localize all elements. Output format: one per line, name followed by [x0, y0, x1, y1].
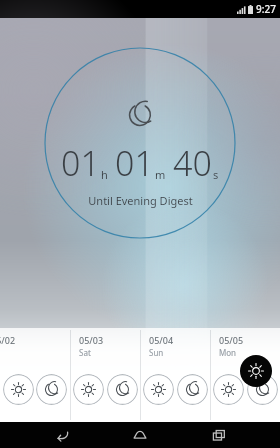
staticText: Sat — [79, 347, 91, 358]
staticText: Until Evening Digest — [88, 193, 193, 208]
staticText: 05/03 — [79, 334, 104, 346]
staticText: m — [155, 167, 166, 182]
button[interactable]: Evening digest — [247, 374, 278, 405]
button[interactable]: Back — [45, 422, 79, 448]
button[interactable]: 05/02 — [0, 328, 70, 422]
button[interactable]: 05/05 — [211, 328, 280, 422]
staticText: h — [101, 167, 108, 182]
staticText: 9:27 — [256, 2, 276, 16]
button[interactable]: Evening digest — [36, 374, 67, 405]
button[interactable]: Evening digest — [177, 374, 208, 405]
button[interactable]: Recent apps — [202, 422, 236, 448]
staticText: 05/02 — [0, 334, 16, 346]
staticText: 05/05 — [219, 334, 244, 346]
staticText: 05/04 — [149, 334, 174, 346]
button[interactable]: Morning digest — [73, 374, 104, 405]
button[interactable]: 05/04 — [141, 328, 210, 422]
staticText: s — [213, 167, 219, 182]
button[interactable]: Morning digest — [143, 374, 174, 405]
staticText: 40 — [173, 140, 212, 186]
button[interactable]: 05/03 — [71, 328, 140, 422]
button[interactable]: Home — [123, 422, 157, 448]
staticText: 01 — [61, 140, 100, 186]
button[interactable]: Evening digest — [107, 374, 138, 405]
button[interactable]: Morning digest — [213, 374, 244, 405]
staticText: 01 — [115, 140, 154, 186]
button[interactable]: Morning digest — [3, 374, 34, 405]
button[interactable]: Daytime digest, selected — [240, 355, 272, 387]
staticText: Mon — [219, 347, 237, 358]
staticText: Sun — [149, 347, 164, 358]
